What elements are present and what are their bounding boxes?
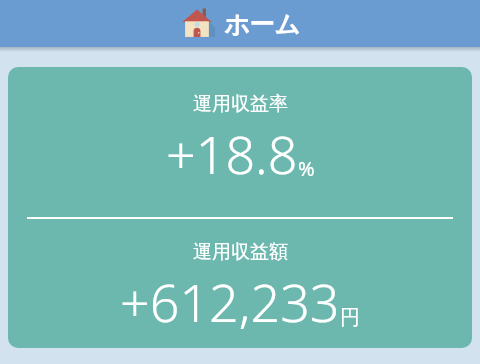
staticText: ホーム [224,9,301,40]
staticText: 運用収益額 [193,240,288,264]
staticText: 円 [340,305,360,330]
button[interactable]: 運用収益率 [8,67,472,348]
staticText: +18.8 [166,118,298,189]
staticText: % [298,155,315,182]
staticText: +612,233 [120,266,340,337]
staticText: 運用収益率 [193,92,288,116]
button[interactable]: ホーム [0,0,480,47]
